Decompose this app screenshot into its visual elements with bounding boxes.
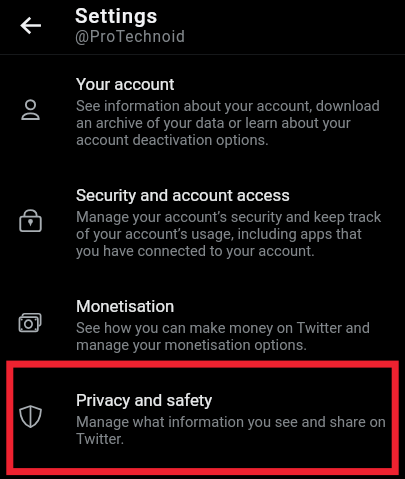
button[interactable]: Back (7, 1, 55, 49)
staticText: Privacy and safety (76, 390, 213, 410)
button[interactable]: Security and account access (0, 166, 405, 277)
staticText: Monetisation (76, 296, 175, 316)
staticText: Your account (76, 74, 175, 94)
staticText: Manage your account’s security and keep … (76, 208, 386, 259)
staticText: @ProTechnoid (75, 28, 186, 46)
staticText: Manage what information you see and shar… (76, 413, 386, 447)
button[interactable]: Privacy and safety (0, 371, 405, 465)
button[interactable]: Your account (0, 55, 405, 166)
staticText: Security and account access (76, 185, 290, 205)
staticText: See information about your account, down… (76, 97, 386, 148)
staticText: Settings (75, 4, 159, 28)
staticText: See how you can make money on Twitter an… (76, 319, 386, 353)
button[interactable]: Monetisation (0, 277, 405, 371)
